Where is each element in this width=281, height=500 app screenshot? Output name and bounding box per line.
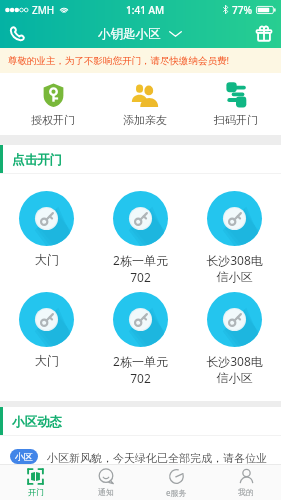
button[interactable]: 通知 xyxy=(71,465,141,500)
button[interactable]: 开门 xyxy=(0,465,71,500)
staticText: 尊敬的业主，为了不影响您开门，请尽快缴纳会员费! xyxy=(8,54,230,67)
staticText: 长沙308电 信小区 xyxy=(206,252,263,285)
staticText: 通知 xyxy=(98,487,114,497)
button[interactable]: 添加亲友 xyxy=(99,73,190,135)
button[interactable]: e服务 xyxy=(141,465,211,500)
staticText: 2栋一单元 702 xyxy=(113,252,168,285)
staticText: 小区新风貌，今天绿化已全部完成，请各位业 xyxy=(47,451,267,464)
button[interactable]: 长沙308电 信小区 xyxy=(187,275,281,401)
button[interactable]: 大门 xyxy=(0,174,93,275)
button[interactable]: 小钥匙小区 xyxy=(92,23,188,45)
button[interactable]: Gifts xyxy=(247,19,281,48)
staticText: 2栋一单元 702 xyxy=(113,353,168,386)
staticText: 长沙308电 信小区 xyxy=(206,353,263,386)
staticText: 我的 xyxy=(238,487,254,497)
staticText: e服务 xyxy=(166,487,187,498)
button[interactable]: 2栋一单元 702 xyxy=(93,275,187,401)
staticText: 77% xyxy=(232,3,252,17)
staticText: 小区动态 xyxy=(12,414,62,430)
staticText: 大门 xyxy=(35,353,59,368)
button[interactable]: 2栋一单元 702 xyxy=(93,174,187,275)
staticText: 扫码开门 xyxy=(214,113,258,127)
staticText: 小钥匙小区 xyxy=(98,26,161,42)
button[interactable]: 小区 xyxy=(0,436,281,464)
button[interactable]: 大门 xyxy=(0,275,93,401)
button[interactable]: Call service xyxy=(0,19,34,48)
staticText: ZMH xyxy=(32,3,55,17)
button[interactable]: 尊敬的业主，为了不影响您开门，请尽快缴纳会员费! xyxy=(0,48,281,73)
staticText: 小区 xyxy=(15,451,33,462)
staticText: 点击开门 xyxy=(12,152,62,168)
staticText: 添加亲友 xyxy=(123,113,167,127)
staticText: 开门 xyxy=(28,487,44,497)
staticText: 1:41 AM xyxy=(126,3,165,17)
staticText: 大门 xyxy=(35,252,59,267)
button[interactable]: 长沙308电 信小区 xyxy=(187,174,281,275)
button[interactable]: 授权开门 xyxy=(7,73,99,135)
staticText: 授权开门 xyxy=(31,113,75,127)
button[interactable]: 我的 xyxy=(211,465,281,500)
button[interactable]: 扫码开门 xyxy=(190,73,281,135)
